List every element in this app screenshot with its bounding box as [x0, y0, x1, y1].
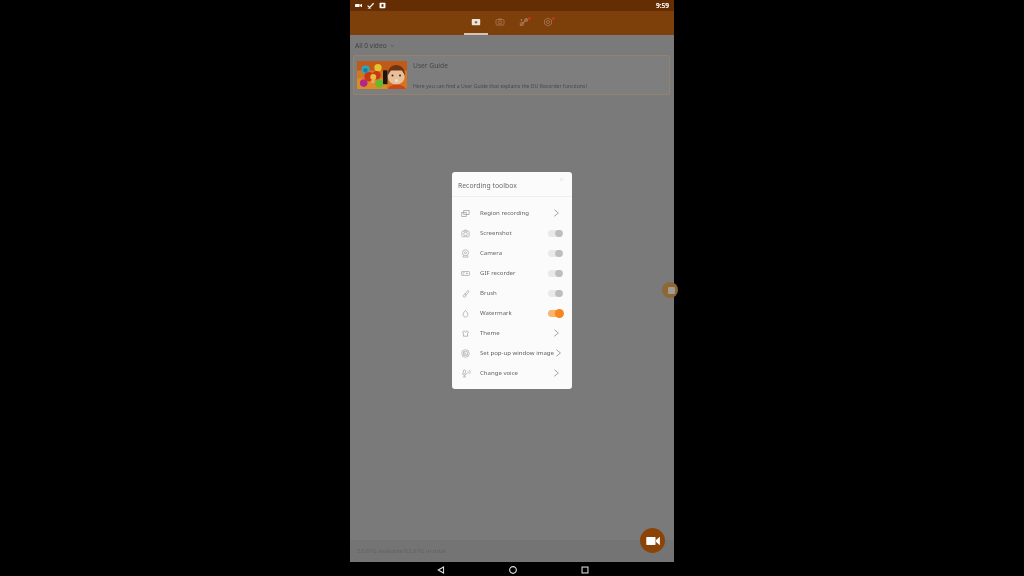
button[interactable]: User Guide	[353, 55, 670, 95]
staticText: 9:59	[656, 1, 669, 10]
staticText: User Guide	[413, 61, 448, 70]
button[interactable]: Watermark	[452, 303, 572, 323]
button[interactable]: Settings	[536, 11, 560, 35]
button[interactable]: GIF recorder	[452, 263, 572, 283]
staticText: All 0 video	[355, 41, 387, 49]
button[interactable]: Recent apps	[578, 563, 591, 576]
staticText: 53.67G available/62.87G in total	[357, 547, 446, 555]
button[interactable]: Theme	[452, 323, 572, 343]
staticText: Change voice	[480, 369, 518, 377]
staticText: Here you can find a User Guide that expl…	[413, 82, 587, 89]
staticText: Watermark	[480, 309, 512, 317]
button[interactable]: Back	[434, 563, 447, 576]
button[interactable]: Region recording	[452, 203, 572, 223]
button[interactable]: Screenshot	[452, 223, 572, 243]
button[interactable]: Edit	[512, 11, 536, 35]
staticText: GIF recorder	[480, 269, 516, 277]
staticText: Set pop-up window image	[480, 349, 554, 357]
staticText: Theme	[480, 329, 500, 337]
button[interactable]: Record video	[464, 11, 488, 35]
button[interactable]: Brush	[452, 283, 572, 303]
staticText: Region recording	[480, 209, 529, 217]
staticText: Camera	[480, 249, 503, 257]
button[interactable]: Camera	[452, 243, 572, 263]
staticText: Screenshot	[480, 229, 512, 237]
button[interactable]: Floating recorder button	[662, 282, 678, 298]
button[interactable]: Home	[506, 563, 519, 576]
button[interactable]: Set pop-up window image	[452, 343, 572, 363]
button[interactable]: Screenshot	[488, 11, 512, 35]
staticText: Brush	[480, 289, 497, 297]
button[interactable]: Close	[557, 175, 566, 184]
button[interactable]: Change voice	[452, 363, 572, 383]
button[interactable]: Start recording	[640, 528, 665, 553]
staticText: Recording toolbox	[458, 181, 517, 190]
